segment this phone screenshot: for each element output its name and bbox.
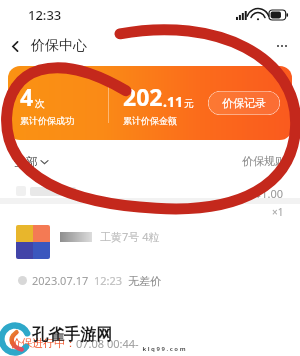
button[interactable]: 价保规则	[242, 154, 286, 168]
staticText: 4	[20, 81, 34, 112]
staticText: ¥1.00	[255, 186, 284, 201]
staticText: 工黄7号 4粒	[100, 229, 160, 244]
staticText: 202	[123, 81, 163, 112]
button[interactable]: More options	[270, 34, 294, 58]
button[interactable]: Back	[0, 31, 30, 61]
button[interactable]: 全部	[14, 154, 48, 169]
staticText: 2023.07.17	[32, 273, 89, 288]
staticText: .11	[163, 92, 183, 111]
staticText: 全部	[14, 154, 38, 169]
staticText: 07.08 00:44-	[76, 336, 139, 351]
staticText: 12:33	[28, 6, 62, 24]
staticText: 价保中心	[31, 37, 87, 55]
staticText: 累计价保成功	[20, 115, 74, 126]
button[interactable]: 价保记录	[208, 91, 280, 115]
staticText: 元	[184, 97, 194, 110]
button[interactable]: 4	[8, 66, 292, 140]
button[interactable]: ¥1.00	[6, 178, 294, 288]
staticText: 价保记录	[222, 96, 266, 110]
staticText: 孔雀手游网	[32, 325, 112, 345]
staticText: 无差价	[128, 274, 161, 288]
staticText: 次	[35, 97, 45, 110]
staticText: 累计价保金额	[123, 115, 177, 126]
staticText: 12:23	[94, 273, 123, 288]
staticText: 价保进行中：	[10, 336, 76, 350]
staticText: ×1	[272, 205, 284, 219]
staticText: k l q 9 9 . c o m	[32, 345, 296, 353]
